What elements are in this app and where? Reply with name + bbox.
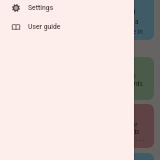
button[interactable]: User guide: [0, 17, 134, 36]
staticText: Settings: [28, 4, 54, 12]
staticText: Second note listing another one second w…: [11, 121, 145, 142]
button[interactable]: A shopping list that is holding a lot of…: [6, 57, 154, 100]
staticText: Remember to buy the milk, eggs, bread an…: [11, 8, 143, 35]
other: Settings: [12, 4, 20, 12]
button[interactable]: New note: [6, 153, 154, 160]
other: User guide: [12, 23, 20, 31]
button[interactable]: Second note listing another one second w…: [6, 104, 154, 148]
button[interactable]: Settings: [0, 0, 134, 17]
staticText: A shopping list that is holding a lot of…: [11, 72, 143, 88]
button[interactable]: Remember to buy the milk, eggs, bread an…: [6, 0, 154, 40]
staticText: User guide: [28, 23, 61, 31]
